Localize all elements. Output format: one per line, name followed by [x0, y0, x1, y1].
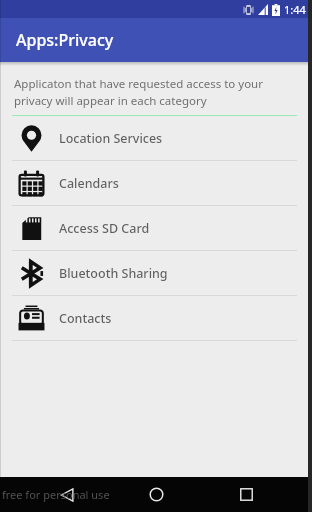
- button[interactable]: Bluetooth Sharing: [0, 251, 312, 295]
- button[interactable]: Access SD Card: [0, 206, 312, 250]
- button[interactable]: Contacts: [0, 296, 312, 340]
- staticText: Calendars: [59, 175, 119, 192]
- staticText: Applicaton that have requested access to…: [14, 76, 294, 108]
- staticText: Bluetooth Sharing: [59, 265, 168, 282]
- staticText: 1:44: [284, 2, 306, 17]
- button[interactable]: Back: [44, 477, 90, 512]
- button[interactable]: Recent apps: [223, 477, 269, 512]
- staticText: Contacts: [59, 310, 112, 327]
- staticText: Location Services: [59, 130, 163, 147]
- staticText: Apps:Privacy: [16, 29, 114, 51]
- button[interactable]: Home: [133, 477, 179, 512]
- button[interactable]: Location Services: [0, 116, 312, 160]
- staticText: free for personal use: [2, 487, 110, 502]
- staticText: Access SD Card: [59, 220, 150, 237]
- button[interactable]: Calendars: [0, 161, 312, 205]
